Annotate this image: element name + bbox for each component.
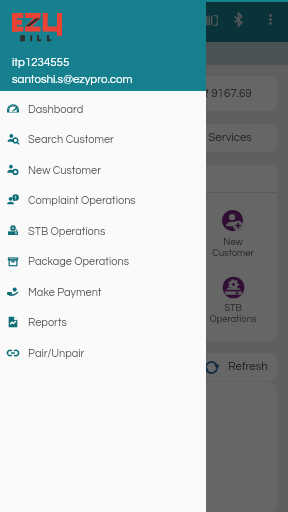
- button[interactable]: Complaint Operations: [0, 185, 206, 215]
- staticText: New Customer: [212, 237, 254, 258]
- button[interactable]: New Customer: [0, 155, 206, 185]
- staticText: Refresh: [228, 361, 268, 373]
- button[interactable]: Refresh: [204, 353, 268, 381]
- staticText: STB Operations: [209, 303, 257, 324]
- staticText: New Customer: [35, 237, 77, 258]
- button[interactable]: New Customer: [11, 210, 100, 258]
- staticText: New Customer: [28, 165, 102, 176]
- button[interactable]: Dashboard: [0, 94, 206, 124]
- staticText: Pair/Unpair: [28, 348, 85, 359]
- staticText: Complaint Operations: [28, 195, 136, 206]
- button[interactable]: New Customer: [189, 210, 277, 258]
- staticText: STB Operations: [32, 303, 80, 324]
- button[interactable]: New Customer: [100, 210, 189, 258]
- button[interactable]: STB Operations: [0, 216, 206, 246]
- staticText: STB Operations: [28, 226, 106, 237]
- staticText: Package Operations: [28, 256, 129, 267]
- button[interactable]: Bluetooth: [230, 11, 246, 27]
- staticText: Dashboard: [28, 104, 84, 115]
- button[interactable]: Scan barcode: [202, 12, 218, 28]
- staticText: ₹ 9167.69: [202, 88, 252, 100]
- staticText: Quick Actions: [25, 173, 96, 185]
- button[interactable]: Reports: [0, 307, 206, 337]
- staticText: Make Payment: [28, 287, 102, 298]
- staticText: Balance: [25, 88, 68, 100]
- button[interactable]: Make Payment: [0, 277, 206, 307]
- button[interactable]: [0, 0, 288, 512]
- button[interactable]: Package Operations: [0, 246, 206, 276]
- staticText: santoshi.s@ezypro.com: [12, 74, 133, 86]
- staticText: Value Added Services: [140, 132, 252, 144]
- button[interactable]: STB Operations: [11, 276, 100, 324]
- staticText: Reports: [28, 317, 67, 328]
- button[interactable]: Search Customer: [0, 124, 206, 154]
- button[interactable]: Pair/Unpair: [0, 338, 206, 368]
- staticText: itp1234555: [12, 57, 70, 69]
- button[interactable]: More options: [263, 12, 277, 26]
- button[interactable]: STB Operations: [189, 276, 277, 324]
- staticText: Search Customer: [28, 134, 114, 145]
